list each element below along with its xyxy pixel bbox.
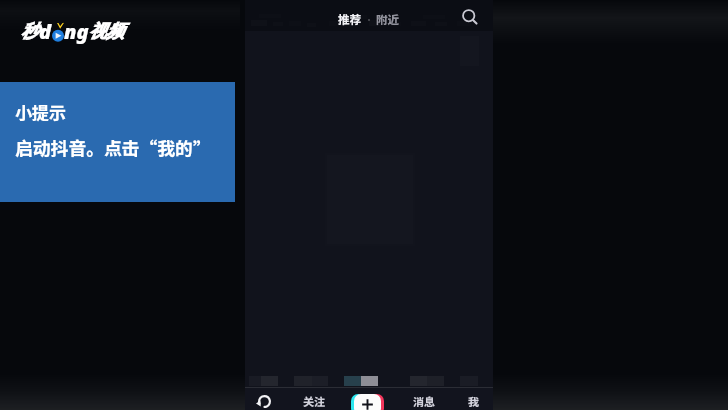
staticText: 我: [468, 393, 479, 409]
button[interactable]: 附近: [372, 7, 403, 32]
button[interactable]: Search: [458, 5, 482, 29]
staticText: d: [39, 18, 52, 44]
button[interactable]: Create video: [352, 393, 383, 410]
staticText: 关注: [303, 393, 325, 409]
staticText: 视频: [89, 20, 124, 42]
staticText: 小提示: [15, 99, 66, 124]
button[interactable]: 关注: [297, 393, 331, 410]
button[interactable]: 消息: [407, 393, 441, 410]
staticText: 启动抖音。点击“我的”: [15, 134, 211, 160]
staticText: 消息: [413, 393, 435, 409]
button[interactable]: 小提示: [0, 82, 235, 202]
staticText: ng: [64, 18, 89, 44]
staticText: 附近: [376, 11, 399, 28]
button[interactable]: 我: [456, 393, 490, 410]
staticText: 推荐: [338, 11, 361, 28]
button[interactable]: Refresh feed: [250, 390, 278, 410]
button[interactable]: 推荐: [334, 7, 365, 32]
staticText: 秒: [21, 20, 39, 42]
